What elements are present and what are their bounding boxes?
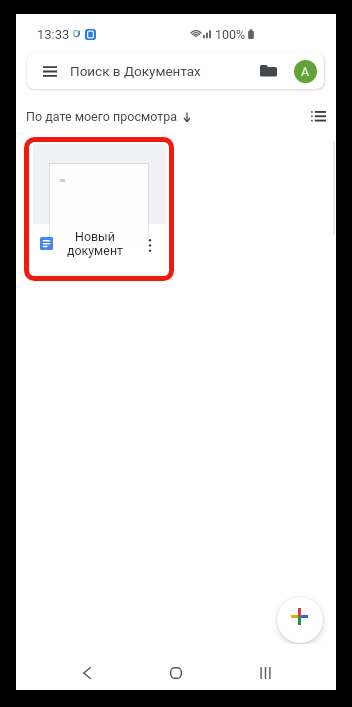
button[interactable]: По дате моего просмотра <box>26 105 192 128</box>
button[interactable]: Switch to list view <box>306 104 330 128</box>
staticText: 100% <box>215 27 246 40</box>
staticText: Поиск в Документах <box>70 63 201 79</box>
staticText: A <box>301 64 310 79</box>
button[interactable]: Account <box>294 60 317 83</box>
button[interactable]: Create new document <box>277 597 323 643</box>
button[interactable]: Folders <box>255 58 281 84</box>
staticText: Новый документ <box>52 229 138 259</box>
button[interactable]: Новый документ <box>33 144 166 274</box>
button[interactable]: Home <box>161 658 190 687</box>
button[interactable]: Back <box>72 658 101 687</box>
button[interactable]: More options <box>139 230 160 260</box>
button[interactable]: Поиск в Документах <box>27 53 324 89</box>
staticText: По дате моего просмотра <box>26 109 178 124</box>
staticText: 13:33 <box>37 27 70 42</box>
button[interactable]: Recent apps <box>251 658 280 687</box>
